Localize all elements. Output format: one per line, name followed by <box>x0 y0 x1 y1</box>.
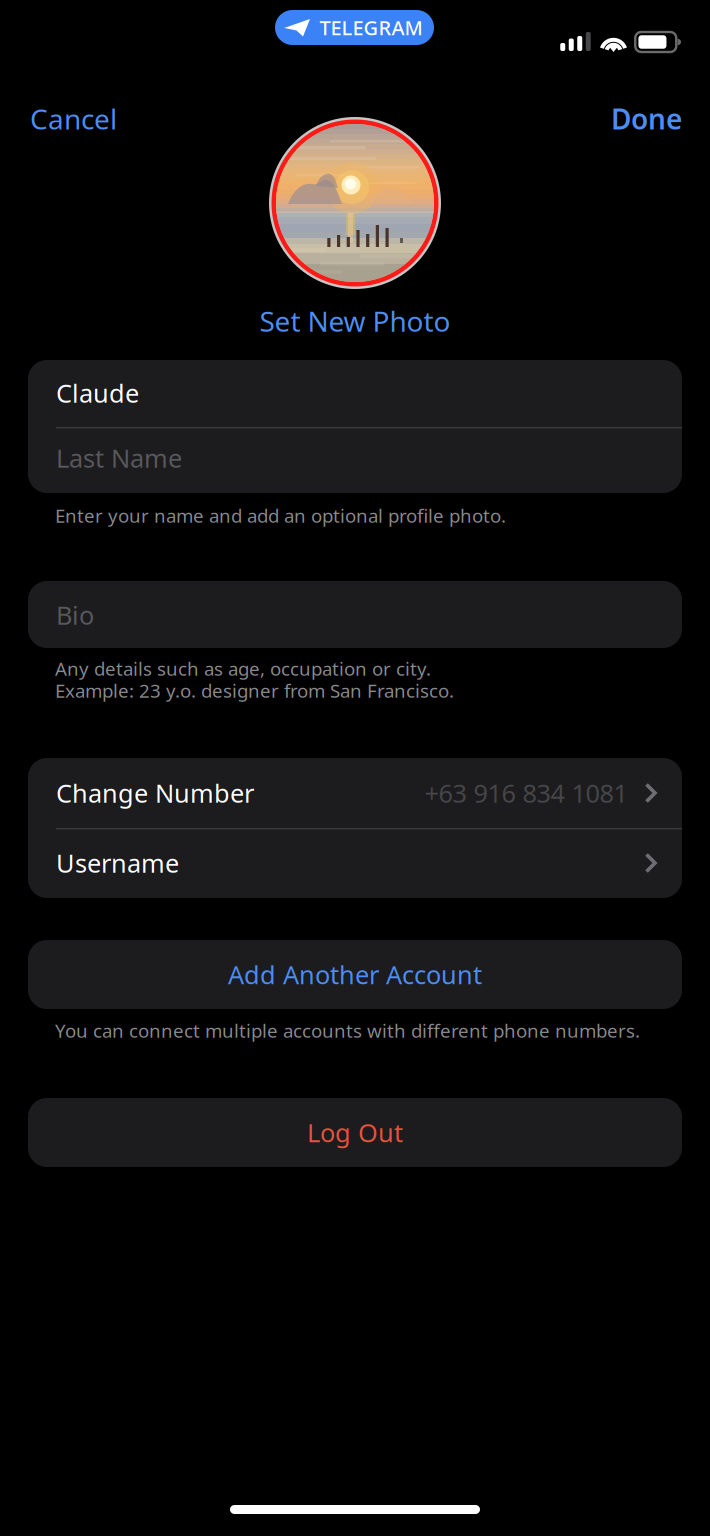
staticText: Claude <box>56 376 139 410</box>
staticText: Done <box>611 100 682 137</box>
button[interactable]: Done <box>604 92 690 145</box>
staticText: Change Number <box>56 776 254 810</box>
button[interactable]: Username <box>28 828 682 898</box>
staticText: Any details such as age, occupation or c… <box>55 656 431 681</box>
staticText: Enter your name and add an optional prof… <box>55 503 506 528</box>
staticText: +63 916 834 1081 <box>424 776 627 810</box>
staticText: Set New Photo <box>259 302 450 340</box>
staticText: You can connect multiple accounts with d… <box>55 1018 640 1043</box>
staticText: Log Out <box>307 1116 403 1149</box>
button[interactable]: Set New Photo <box>0 303 710 339</box>
button[interactable]: Profile photo <box>269 117 441 289</box>
staticText: Bio <box>56 598 94 632</box>
button[interactable]: Cancel <box>22 92 125 145</box>
button[interactable]: Log Out <box>28 1098 682 1167</box>
button[interactable]: Add Another Account <box>28 940 682 1009</box>
staticText: Example: 23 y.o. designer from San Franc… <box>55 678 454 703</box>
staticText: Last Name <box>56 441 182 475</box>
staticText: Cancel <box>30 100 117 137</box>
staticText: TELEGRAM <box>319 14 422 41</box>
staticText: Username <box>56 846 179 880</box>
button[interactable]: Change Number <box>28 758 682 828</box>
staticText: Add Another Account <box>228 958 482 991</box>
